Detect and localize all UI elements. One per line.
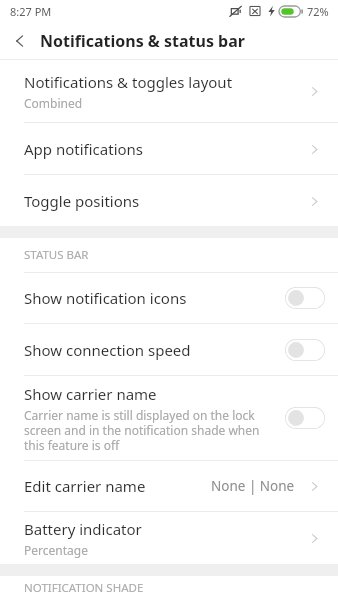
- button[interactable]: Toggle: [285, 339, 325, 361]
- button[interactable]: Edit carrier name: [0, 461, 338, 511]
- staticText: STATUS BAR: [24, 247, 89, 263]
- staticText: NOTIFICATION SHADE: [24, 580, 144, 596]
- staticText: Show notification icons: [24, 288, 187, 308]
- button[interactable]: Toggle: [285, 287, 325, 309]
- button[interactable]: Show carrier name: [0, 376, 338, 460]
- staticText: App notifications: [24, 139, 144, 159]
- button[interactable]: Show connection speed: [0, 324, 338, 375]
- staticText: 8:27 PM: [10, 4, 52, 19]
- staticText: Combined: [24, 95, 83, 111]
- staticText: None | None: [211, 477, 295, 495]
- button[interactable]: Toggle: [285, 407, 325, 429]
- staticText: Notifications & status bar: [40, 30, 245, 52]
- staticText: Percentage: [24, 542, 88, 558]
- button[interactable]: Back: [0, 22, 40, 59]
- staticText: Show carrier name: [24, 384, 157, 404]
- staticText: Show connection speed: [24, 340, 191, 360]
- staticText: Notifications & toggles layout: [24, 72, 233, 92]
- button[interactable]: App notifications: [0, 123, 338, 174]
- staticText: Toggle positions: [24, 191, 140, 211]
- button[interactable]: Battery indicator: [0, 512, 338, 564]
- staticText: Edit carrier name: [24, 476, 146, 496]
- button[interactable]: Notifications & toggles layout: [0, 60, 338, 122]
- staticText: Carrier name is still displayed on the l…: [24, 407, 277, 453]
- button[interactable]: Toggle positions: [0, 175, 338, 226]
- staticText: Battery indicator: [24, 519, 142, 539]
- staticText: 72%: [307, 4, 329, 19]
- button[interactable]: Show notification icons: [0, 273, 338, 323]
